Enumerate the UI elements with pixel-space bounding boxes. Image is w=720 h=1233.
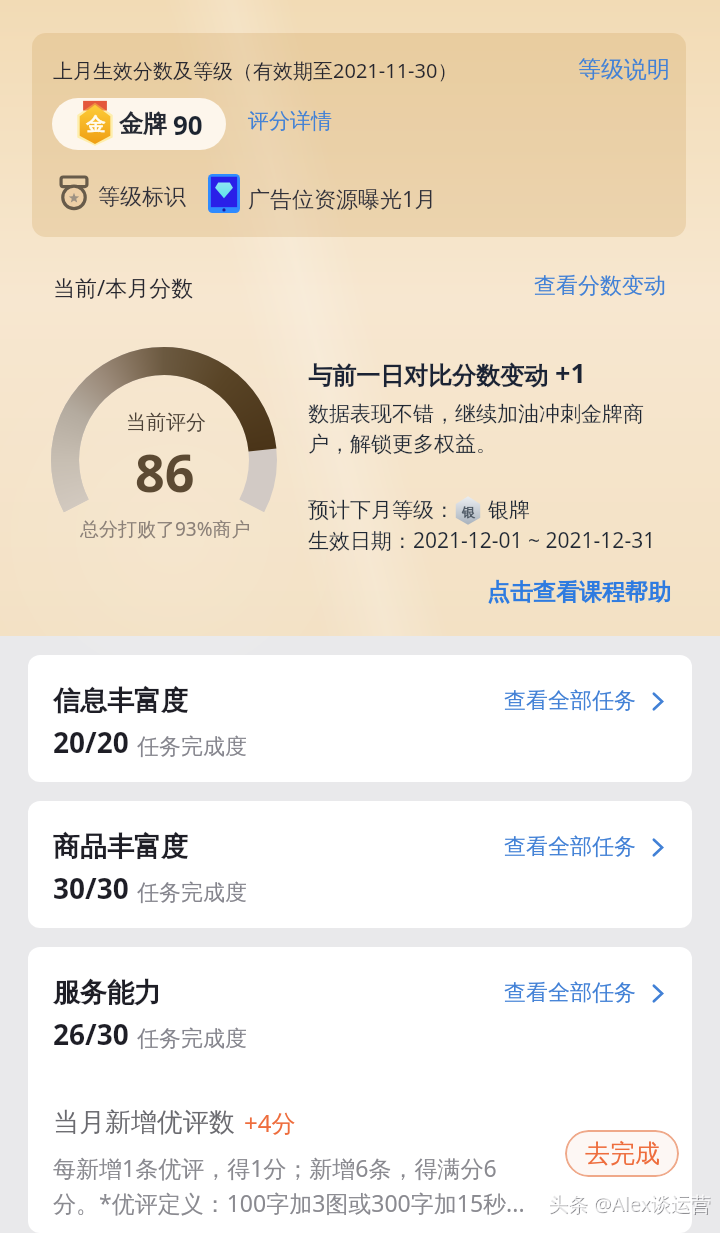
- staticText: 等级标识: [98, 183, 186, 211]
- staticText: 服务能力: [53, 976, 161, 1010]
- staticText: 银: [462, 504, 475, 520]
- staticText: 查看全部任务: [504, 687, 636, 715]
- staticText: 生效日期：2021-12-01 ~ 2021-12-31: [308, 526, 656, 555]
- staticText: +4分: [244, 1106, 296, 1139]
- staticText: 当前/本月分数: [53, 272, 194, 302]
- staticText: 与前一日对比分数变动: [308, 361, 548, 391]
- staticText: 查看分数变动: [534, 272, 666, 300]
- staticText: 任务完成度: [137, 733, 247, 761]
- button[interactable]: 商品丰富度: [28, 801, 692, 928]
- staticText: 当月新增优评数: [53, 1106, 235, 1139]
- button[interactable]: 评分详情: [248, 108, 332, 134]
- button[interactable]: 点击查看课程帮助: [487, 578, 671, 607]
- staticText: 查看全部任务: [504, 833, 636, 861]
- staticText: 90: [173, 107, 203, 142]
- staticText: 26/30: [53, 1015, 129, 1053]
- staticText: +1: [555, 354, 586, 391]
- button[interactable]: 查看全部任务: [504, 979, 669, 1007]
- staticText: 20/20: [53, 723, 129, 761]
- staticText: 金: [86, 113, 105, 137]
- button[interactable]: 服务能力: [28, 947, 692, 1074]
- staticText: 广告位资源曝光1月: [248, 183, 437, 213]
- staticText: 评分详情: [248, 108, 332, 134]
- button[interactable]: 等级说明: [578, 55, 670, 84]
- staticText: 银牌: [488, 497, 530, 523]
- button[interactable]: 金: [52, 98, 226, 150]
- other: 广告位资源: [208, 174, 240, 213]
- staticText: 预计下月等级：: [308, 497, 455, 523]
- button[interactable]: 查看分数变动: [534, 272, 666, 300]
- staticText: 点击查看课程帮助: [487, 578, 671, 607]
- staticText: 头条 @Alex谈运营: [549, 1191, 712, 1218]
- staticText: 商品丰富度: [53, 830, 188, 864]
- button[interactable]: 查看全部任务: [504, 833, 669, 861]
- staticText: 任务完成度: [137, 1025, 247, 1053]
- staticText: 查看全部任务: [504, 979, 636, 1007]
- staticText: 头条 @Alex谈运营: [548, 1190, 711, 1217]
- staticText: 86: [135, 436, 195, 507]
- staticText: 每新增1条优评，得1分；新增6条，得满分6 分。*优评定义：100字加3图或30…: [53, 1152, 525, 1219]
- staticText: 当前评分: [126, 410, 206, 435]
- staticText: 去完成: [585, 1138, 660, 1169]
- button[interactable]: 查看全部任务: [504, 687, 669, 715]
- staticText: 数据表现不错，继续加油冲刺金牌商 户，解锁更多权益。: [308, 401, 644, 458]
- staticText: 任务完成度: [137, 879, 247, 907]
- button[interactable]: 去完成: [565, 1130, 679, 1177]
- staticText: 等级说明: [578, 55, 670, 84]
- staticText: 金牌: [119, 109, 167, 139]
- staticText: 上月生效分数及等级（有效期至2021-11-30）: [53, 57, 458, 84]
- button[interactable]: 信息丰富度: [28, 655, 692, 782]
- other: 等级标识: [57, 176, 91, 210]
- staticText: 信息丰富度: [53, 684, 188, 718]
- staticText: 30/30: [53, 869, 129, 907]
- staticText: 总分打败了93%商户: [80, 516, 251, 542]
